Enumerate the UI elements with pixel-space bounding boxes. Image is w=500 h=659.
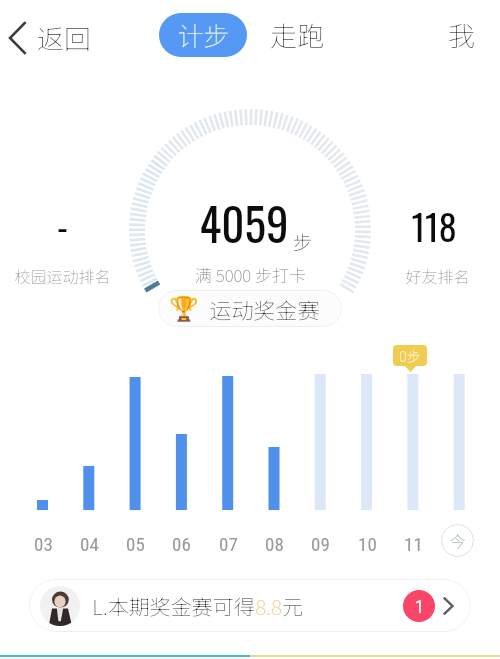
button[interactable]: 计步 bbox=[159, 13, 247, 57]
staticText: 校园运动排名 bbox=[14, 264, 111, 287]
button[interactable]: 🏆 bbox=[158, 290, 342, 327]
staticText: 元 bbox=[282, 591, 303, 621]
staticText: 07 bbox=[219, 533, 238, 555]
button[interactable]: 返回 bbox=[4, 14, 95, 61]
staticText: 0步 bbox=[399, 346, 421, 366]
button[interactable]: L.本期奖金赛可得 bbox=[29, 579, 471, 632]
staticText: 05 bbox=[126, 533, 145, 555]
staticText: 我 bbox=[448, 15, 475, 54]
staticText: 走跑 bbox=[270, 15, 324, 54]
staticText: 计步 bbox=[177, 16, 230, 54]
staticText: 8.8 bbox=[255, 591, 282, 621]
staticText: 09 bbox=[311, 533, 330, 555]
staticText: 返回 bbox=[37, 18, 91, 57]
staticText: 06 bbox=[172, 533, 191, 555]
button[interactable]: 我 bbox=[444, 11, 479, 58]
staticText: 好友排名 bbox=[405, 264, 470, 287]
staticText: 04 bbox=[80, 533, 99, 555]
staticText: 🏆 bbox=[169, 295, 199, 323]
staticText: 今 bbox=[449, 529, 466, 552]
staticText: 03 bbox=[34, 533, 53, 555]
staticText: 118 bbox=[411, 199, 457, 252]
staticText: 1 bbox=[415, 596, 424, 617]
staticText: L.本期奖金赛可得 bbox=[92, 591, 255, 621]
staticText: 08 bbox=[265, 533, 284, 555]
button[interactable]: 今天 bbox=[441, 524, 474, 557]
staticText: 运动奖金赛 bbox=[209, 293, 320, 325]
staticText: 步 bbox=[293, 227, 313, 256]
staticText: - bbox=[57, 198, 68, 251]
staticText: 10 bbox=[358, 533, 377, 555]
staticText: 满 5000 步打卡 bbox=[195, 262, 306, 287]
staticText: 11 bbox=[404, 533, 423, 555]
button[interactable]: 走跑 bbox=[266, 11, 328, 58]
staticText: 4059 bbox=[199, 189, 289, 256]
